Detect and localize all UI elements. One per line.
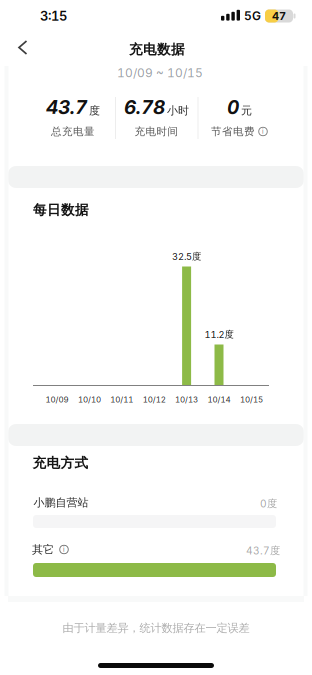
staticText: 10/12 — [143, 395, 166, 404]
staticText: 充电数据 — [129, 41, 185, 58]
staticText: 由于计量差异，统计数据存在一定误差 — [62, 621, 249, 635]
staticText: 充电时间 — [134, 125, 178, 138]
staticText: 总充电量 — [51, 125, 95, 138]
staticText: 11.2度 — [204, 329, 233, 340]
staticText: 节省电费 — [211, 125, 255, 138]
staticText: 3:15 — [40, 8, 67, 24]
staticText: 0度 — [260, 497, 277, 510]
staticText: 0 — [227, 95, 239, 118]
staticText: i — [262, 128, 264, 135]
staticText: 小鹏自营站 — [33, 496, 88, 509]
staticText: 小时 — [167, 104, 189, 117]
button[interactable]: 说明 — [258, 126, 268, 136]
staticText: 充电方式 — [32, 454, 88, 471]
staticText: 10/09 ~ 10/15 — [117, 66, 203, 80]
staticText: 10/13 — [175, 395, 198, 404]
staticText: 43.7度 — [246, 544, 280, 557]
staticText: 度 — [89, 104, 100, 117]
staticText: 43.7 — [46, 95, 87, 118]
staticText: 32.5度 — [172, 251, 201, 262]
staticText: 其它 — [32, 543, 54, 556]
staticText: 10/14 — [207, 395, 230, 404]
button[interactable]: 返回 — [8, 38, 36, 57]
staticText: 10/10 — [78, 395, 101, 404]
staticText: 每日数据 — [33, 201, 89, 218]
staticText: i — [63, 546, 65, 553]
staticText: 元 — [241, 104, 252, 117]
staticText: 47 — [272, 9, 286, 23]
staticText: 10/11 — [110, 395, 133, 404]
staticText: 6.78 — [124, 95, 165, 118]
staticText: 10/15 — [240, 395, 263, 404]
staticText: 10/09 — [45, 395, 68, 404]
button[interactable]: 说明 — [59, 544, 69, 554]
staticText: 5G — [244, 9, 261, 23]
